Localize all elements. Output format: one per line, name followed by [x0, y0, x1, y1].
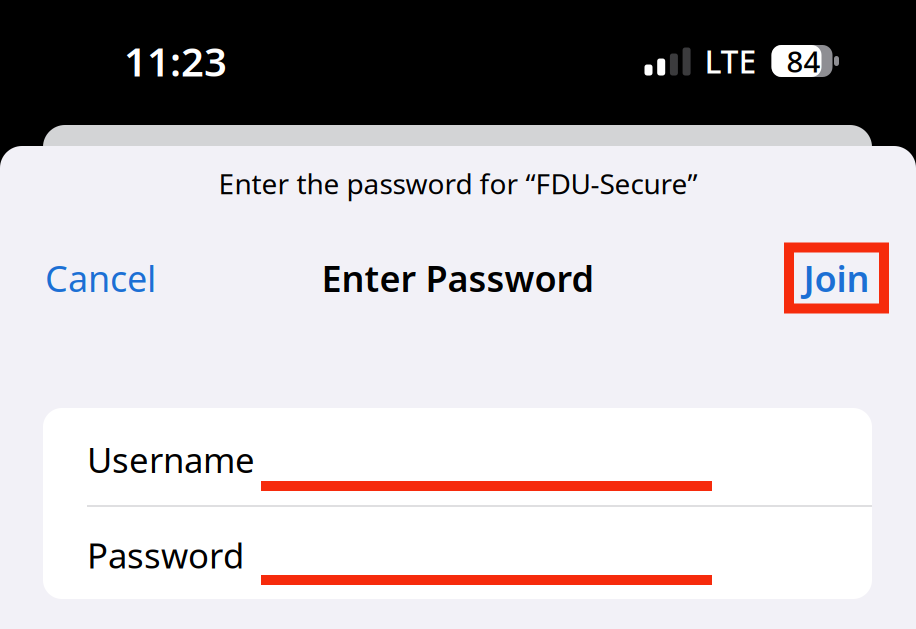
staticText: Password [87, 532, 244, 578]
button[interactable]: Cancel [0, 236, 180, 320]
staticText: Enter the password for “FDU-Secure” [218, 165, 697, 202]
button[interactable]: Join [784, 242, 916, 313]
staticText: LTE [704, 40, 756, 82]
staticText: Username [87, 436, 255, 482]
staticText: Cancel [45, 254, 156, 302]
staticText: Join [803, 254, 869, 302]
staticText: 84 [786, 41, 820, 80]
staticText: 11:23 [124, 34, 227, 87]
staticText: Enter Password [321, 254, 594, 302]
